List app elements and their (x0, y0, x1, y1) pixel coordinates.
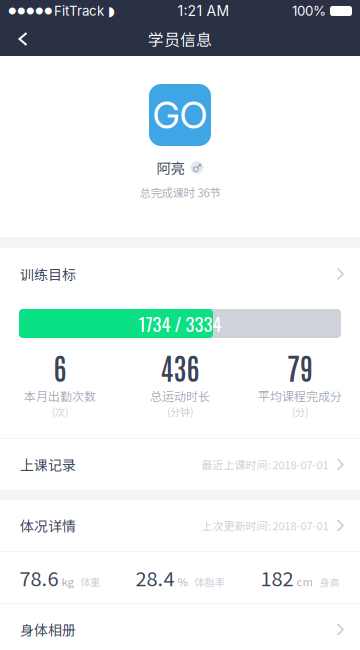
staticText: (分钟) (167, 404, 193, 419)
staticText: 1734 / 3334 (138, 310, 221, 337)
staticText: 训练目标 (20, 264, 76, 284)
staticText: 6 (53, 348, 66, 386)
staticText: FitTrack (54, 3, 104, 19)
staticText: % (177, 573, 187, 589)
staticText: kg (61, 573, 73, 589)
staticText: 上次更新时间: 2018-07-01 (201, 518, 328, 533)
staticText: 本月出勤次数 (24, 387, 96, 404)
staticText: 体况详情 (20, 515, 76, 536)
button[interactable]: 身体相册 (0, 604, 360, 650)
staticText: (次) (52, 404, 68, 419)
staticText: 436 (160, 348, 199, 386)
button[interactable]: 上课记录 (0, 439, 360, 490)
staticText: 总运动时长 (150, 387, 210, 404)
staticText: 100% (292, 3, 326, 19)
staticText: 阿亮 (156, 157, 184, 178)
staticText: 身体相册 (20, 619, 76, 640)
staticText: GO (152, 92, 207, 138)
staticText: 1:21 AM (177, 2, 229, 19)
staticText: 28.4 (135, 563, 174, 592)
staticText: 身高 (319, 574, 339, 589)
staticText: (分) (292, 404, 308, 419)
staticText: 182 (260, 563, 293, 592)
staticText: 体脂率 (194, 574, 224, 589)
staticText: 上课记录 (20, 454, 76, 475)
staticText: ●●●●● (8, 5, 53, 17)
button[interactable]: 体况详情 (0, 500, 360, 551)
staticText: ◗ (108, 3, 115, 19)
button[interactable]: 训练目标 (0, 248, 360, 300)
staticText: cm (296, 573, 312, 589)
staticText: 平均课程完成分 (258, 387, 342, 404)
staticText: 79 (287, 348, 313, 386)
staticText: 78.6 (19, 563, 58, 592)
button[interactable]: Back (0, 22, 44, 56)
staticText: 体重 (80, 574, 100, 589)
staticText: 学员信息 (148, 28, 212, 50)
staticText: 最近上课时间: 2018-07-01 (201, 457, 328, 472)
staticText: 总完成课时 36节 (139, 184, 220, 200)
